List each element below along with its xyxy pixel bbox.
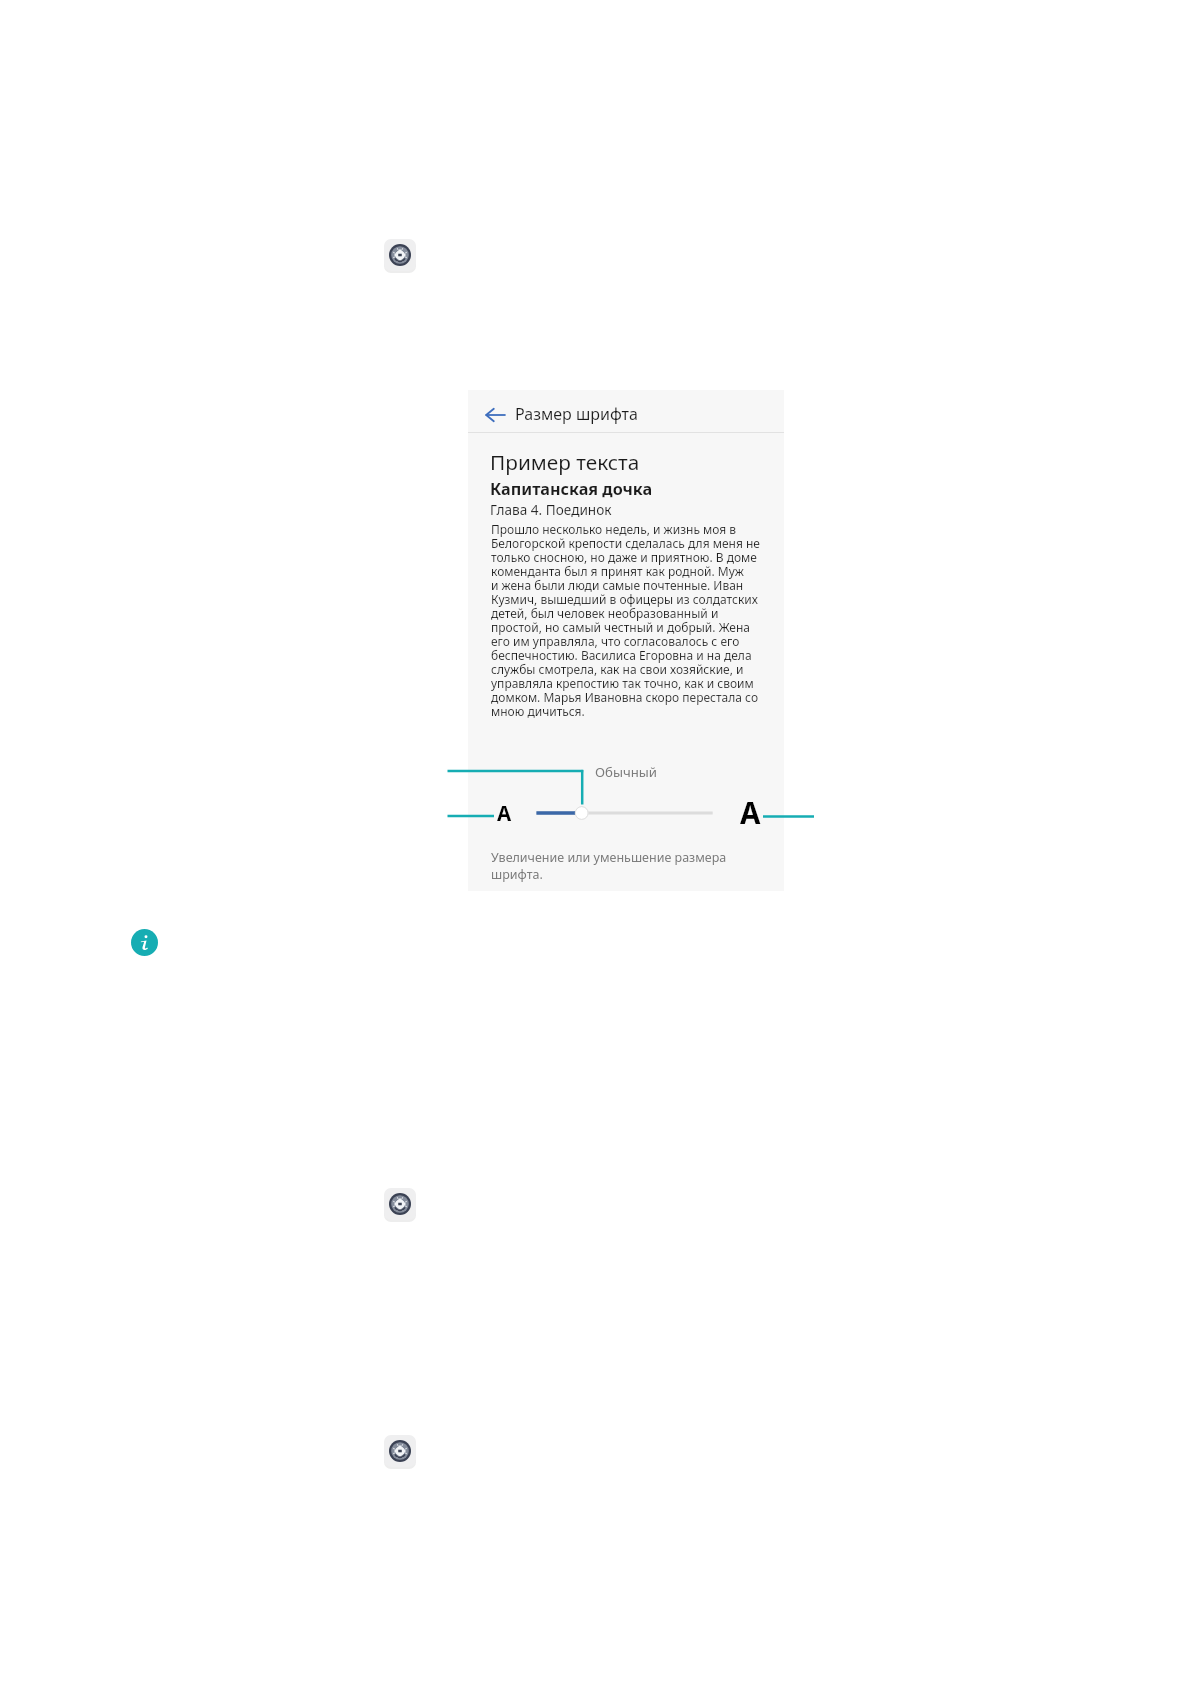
button[interactable]: Information [131,929,158,956]
button[interactable]: Back [481,401,509,429]
staticText: A [740,792,761,832]
staticText: Глава 4. Поединок [490,500,612,519]
button[interactable]: Font size slider [528,802,728,824]
staticText: Обычный [595,763,657,781]
staticText: Пример текста [490,448,640,476]
button[interactable]: Settings [384,1435,416,1467]
staticText: A [497,799,512,827]
button[interactable]: Back [468,390,784,432]
button[interactable]: Settings [384,1188,416,1220]
staticText: Прошло несколько недель, и жизнь моя в Б… [491,521,760,720]
button[interactable]: Settings [384,239,416,271]
staticText: Размер шрифта [515,403,638,425]
staticText: Капитанская дочка [490,478,653,500]
staticText: Увеличение или уменьшение размера шрифта… [491,849,727,883]
